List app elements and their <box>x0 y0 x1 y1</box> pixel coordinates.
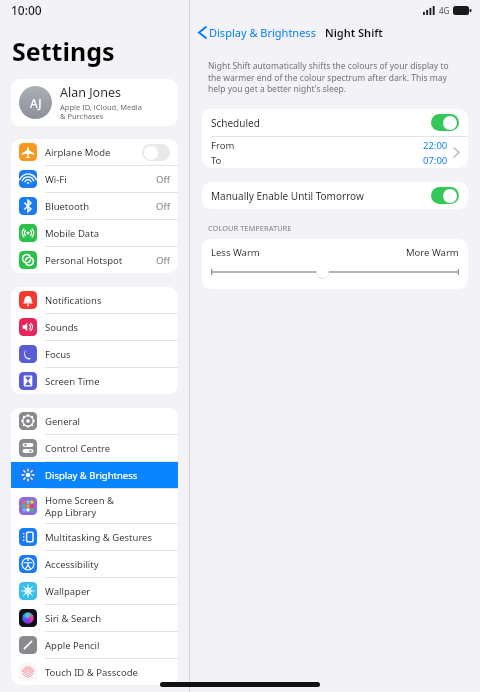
staticText: Accessibility <box>45 558 170 571</box>
staticText: Alan Jones <box>60 84 121 101</box>
staticText: Personal Hotspot <box>45 254 156 267</box>
staticText: Mobile Data <box>45 227 170 240</box>
staticText: More Warm <box>406 246 459 259</box>
button[interactable]: Apple Pencil <box>11 632 178 658</box>
button[interactable]: From <box>202 137 468 168</box>
button[interactable]: Scheduled <box>202 109 468 136</box>
staticText: Off <box>156 173 170 186</box>
button[interactable]: Colour temperature slider <box>211 264 459 280</box>
button[interactable]: Accessibility <box>11 551 178 577</box>
button[interactable]: Display & Brightness <box>11 462 178 488</box>
staticText: Apple Pencil <box>45 639 170 652</box>
button[interactable]: Toggle <box>142 144 170 161</box>
staticText: Night Shift automatically shifts the col… <box>208 60 462 95</box>
button[interactable]: Touch ID & Passcode <box>11 659 178 685</box>
button[interactable]: Multitasking & Gestures <box>11 524 178 550</box>
staticText: Less Warm <box>211 246 260 259</box>
staticText: Screen Time <box>45 375 170 388</box>
button[interactable]: Wi-Fi <box>11 166 178 192</box>
staticText: Airplane Mode <box>45 146 142 159</box>
staticText: Bluetooth <box>45 200 156 213</box>
button[interactable]: AJ <box>11 79 178 126</box>
staticText: Multitasking & Gestures <box>45 531 170 544</box>
staticText: Off <box>156 254 170 267</box>
staticText: Focus <box>45 348 170 361</box>
button[interactable]: Siri & Search <box>11 605 178 631</box>
staticText: 22:00 <box>423 139 448 152</box>
staticText: Manually Enable Until Tomorrow <box>211 189 431 203</box>
staticText: Wallpaper <box>45 585 170 598</box>
staticText: Off <box>156 200 170 213</box>
button[interactable]: Focus <box>11 341 178 367</box>
button[interactable]: Screen Time <box>11 368 178 394</box>
staticText: Night Shift <box>325 25 383 40</box>
button[interactable]: Display & Brightness <box>197 23 318 42</box>
staticText: To <box>211 154 222 167</box>
button[interactable]: Home Screen & App Library <box>11 489 178 523</box>
button[interactable]: Personal Hotspot <box>11 247 178 273</box>
button[interactable]: Airplane Mode <box>11 139 178 165</box>
staticText: Home Screen & App Library <box>45 494 170 518</box>
button[interactable]: Control Centre <box>11 435 178 461</box>
staticText: Apple ID, iCloud, Media & Purchases <box>60 102 142 122</box>
staticText: 10:00 <box>11 2 42 18</box>
button[interactable]: Bluetooth <box>11 193 178 219</box>
button[interactable]: Notifications <box>11 287 178 313</box>
button[interactable]: Toggle <box>431 187 459 204</box>
button[interactable]: Mobile Data <box>11 220 178 246</box>
staticText: Touch ID & Passcode <box>45 666 170 679</box>
staticText: Notifications <box>45 294 170 307</box>
staticText: Sounds <box>45 321 170 334</box>
button[interactable]: General <box>11 408 178 434</box>
staticText: General <box>45 415 170 428</box>
staticText: Wi-Fi <box>45 173 156 186</box>
button[interactable]: Toggle <box>431 114 459 131</box>
staticText: AJ <box>30 95 42 111</box>
staticText: Siri & Search <box>45 612 170 625</box>
staticText: From <box>211 139 235 152</box>
staticText: COLOUR TEMPERATURE <box>208 223 292 233</box>
staticText: Settings <box>12 34 115 68</box>
staticText: 07:00 <box>423 154 448 167</box>
staticText: 4G <box>439 5 450 16</box>
button[interactable]: Sounds <box>11 314 178 340</box>
staticText: Display & Brightness <box>209 25 316 40</box>
button[interactable]: Manually Enable Until Tomorrow <box>202 182 468 209</box>
staticText: Control Centre <box>45 442 170 455</box>
staticText: Scheduled <box>211 116 431 130</box>
staticText: Display & Brightness <box>45 469 170 482</box>
button[interactable]: Wallpaper <box>11 578 178 604</box>
